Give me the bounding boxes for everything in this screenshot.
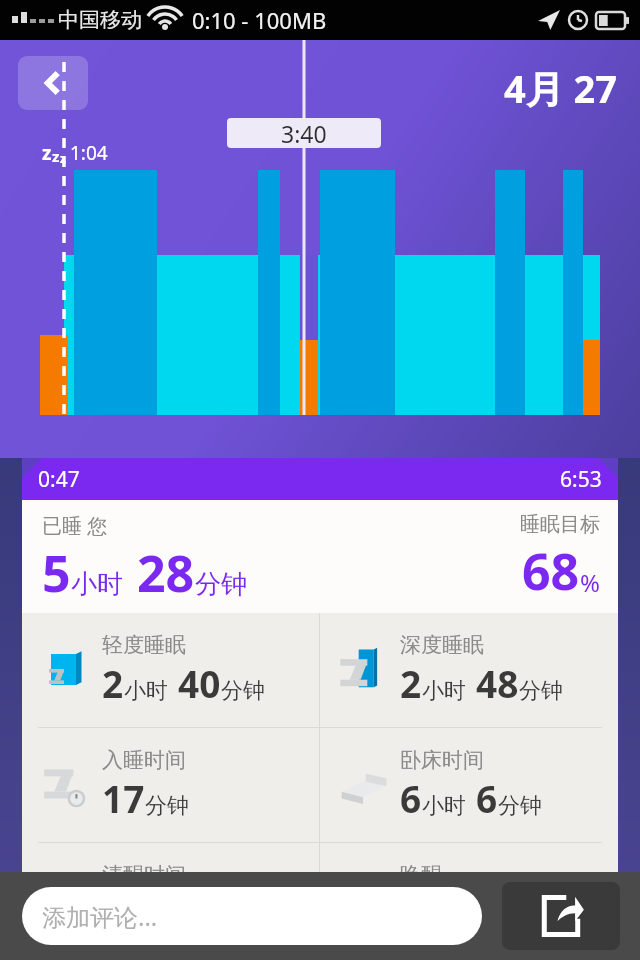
button[interactable]: 轻度睡眠	[22, 613, 319, 727]
staticText: 小时	[422, 792, 466, 820]
staticText: 添加评论...	[42, 900, 158, 933]
staticText: 1:04	[70, 140, 108, 166]
staticText: 小时	[71, 568, 123, 601]
staticText: 48	[476, 658, 519, 708]
button[interactable]: Back	[18, 56, 88, 110]
button[interactable]: 入睡时间	[22, 728, 319, 842]
staticText: 入睡时间	[102, 747, 186, 773]
staticText: 中国移动	[58, 7, 142, 33]
button[interactable]: 清醒时间	[22, 843, 319, 957]
staticText: 3:40	[281, 118, 327, 148]
staticText: 轻度睡眠	[102, 632, 186, 658]
staticText: 68	[522, 537, 580, 605]
staticText: 0:10 - 100MB	[192, 5, 327, 35]
staticText: 39	[102, 888, 145, 938]
staticText: 分钟	[145, 792, 189, 820]
button[interactable]: Share	[502, 882, 620, 950]
button[interactable]: 深度睡眠	[320, 613, 618, 727]
staticText: 28	[137, 539, 195, 607]
staticText: 卧床时间	[400, 747, 484, 773]
staticText: 分钟	[221, 677, 265, 705]
staticText: 4月 27	[504, 62, 618, 114]
staticText: 分钟	[498, 792, 542, 820]
staticText: 分钟	[519, 677, 563, 705]
staticText: 深度睡眠	[400, 632, 484, 658]
button[interactable]: 添加评论...	[22, 887, 482, 945]
staticText: 6	[400, 773, 422, 823]
staticText: 6	[476, 773, 498, 823]
staticText: 唤醒	[400, 862, 442, 888]
staticText: z	[52, 146, 60, 166]
staticText: 分钟	[195, 568, 247, 601]
button[interactable]: 唤醒	[320, 843, 618, 957]
staticText: 17	[102, 773, 145, 823]
staticText: 小时	[124, 677, 168, 705]
staticText: 0:47	[38, 465, 80, 494]
staticText: %	[580, 566, 600, 599]
staticText: 5	[42, 539, 71, 607]
staticText: 2	[400, 658, 422, 708]
staticText: 40	[178, 658, 221, 708]
staticText: 清醒时间	[102, 862, 186, 888]
staticText: z	[42, 140, 52, 166]
button[interactable]: 卧床时间	[320, 728, 618, 842]
staticText: 睡眠目标	[520, 512, 600, 537]
staticText: 2	[102, 658, 124, 708]
staticText: 6:53	[560, 465, 602, 494]
staticText: 小时	[422, 677, 466, 705]
staticText: z	[60, 150, 66, 166]
staticText: 已睡 您	[42, 512, 108, 539]
